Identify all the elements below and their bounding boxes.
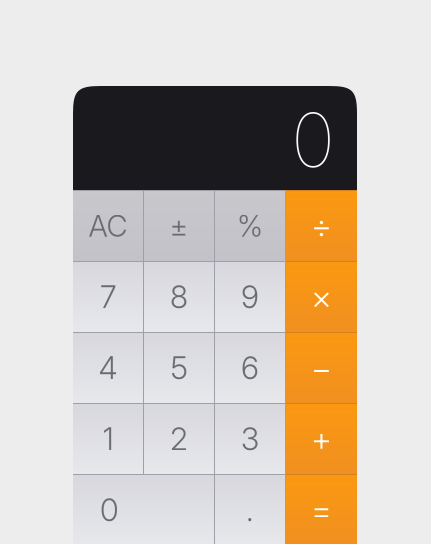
staticText: 0 xyxy=(100,491,119,528)
button[interactable]: 8 xyxy=(144,262,214,332)
staticText: 4 xyxy=(98,349,117,386)
button[interactable]: = xyxy=(286,475,357,544)
button[interactable]: . xyxy=(215,475,285,544)
staticText: 1 xyxy=(102,420,113,457)
button[interactable]: ± xyxy=(144,191,214,261)
staticText: 5 xyxy=(170,349,187,386)
staticText: × xyxy=(311,277,332,317)
button[interactable]: × xyxy=(286,262,357,332)
button[interactable]: − xyxy=(286,333,357,403)
staticText: 2 xyxy=(170,420,188,457)
staticText: 0 xyxy=(291,95,335,185)
button[interactable]: 0 xyxy=(73,475,214,544)
button[interactable]: + xyxy=(286,404,357,474)
button[interactable]: ÷ xyxy=(286,191,357,261)
button[interactable]: 6 xyxy=(215,333,285,403)
staticText: 3 xyxy=(241,420,259,457)
button[interactable]: 5 xyxy=(144,333,214,403)
staticText: 8 xyxy=(170,278,188,315)
staticText: 7 xyxy=(100,278,116,315)
staticText: + xyxy=(311,419,332,459)
staticText: AC xyxy=(88,208,127,244)
staticText: % xyxy=(237,208,263,244)
button[interactable]: AC xyxy=(73,191,143,261)
button[interactable]: 9 xyxy=(215,262,285,332)
button[interactable]: 7 xyxy=(73,262,143,332)
button[interactable]: 1 xyxy=(73,404,143,474)
button[interactable]: 4 xyxy=(73,333,143,403)
staticText: = xyxy=(311,490,332,530)
staticText: . xyxy=(246,491,254,528)
staticText: − xyxy=(311,348,332,388)
staticText: 9 xyxy=(241,278,259,315)
staticText: ± xyxy=(169,208,188,244)
button[interactable]: % xyxy=(215,191,285,261)
staticText: 6 xyxy=(241,349,259,386)
staticText: ÷ xyxy=(311,206,332,246)
button[interactable]: 2 xyxy=(144,404,214,474)
button[interactable]: 3 xyxy=(215,404,285,474)
